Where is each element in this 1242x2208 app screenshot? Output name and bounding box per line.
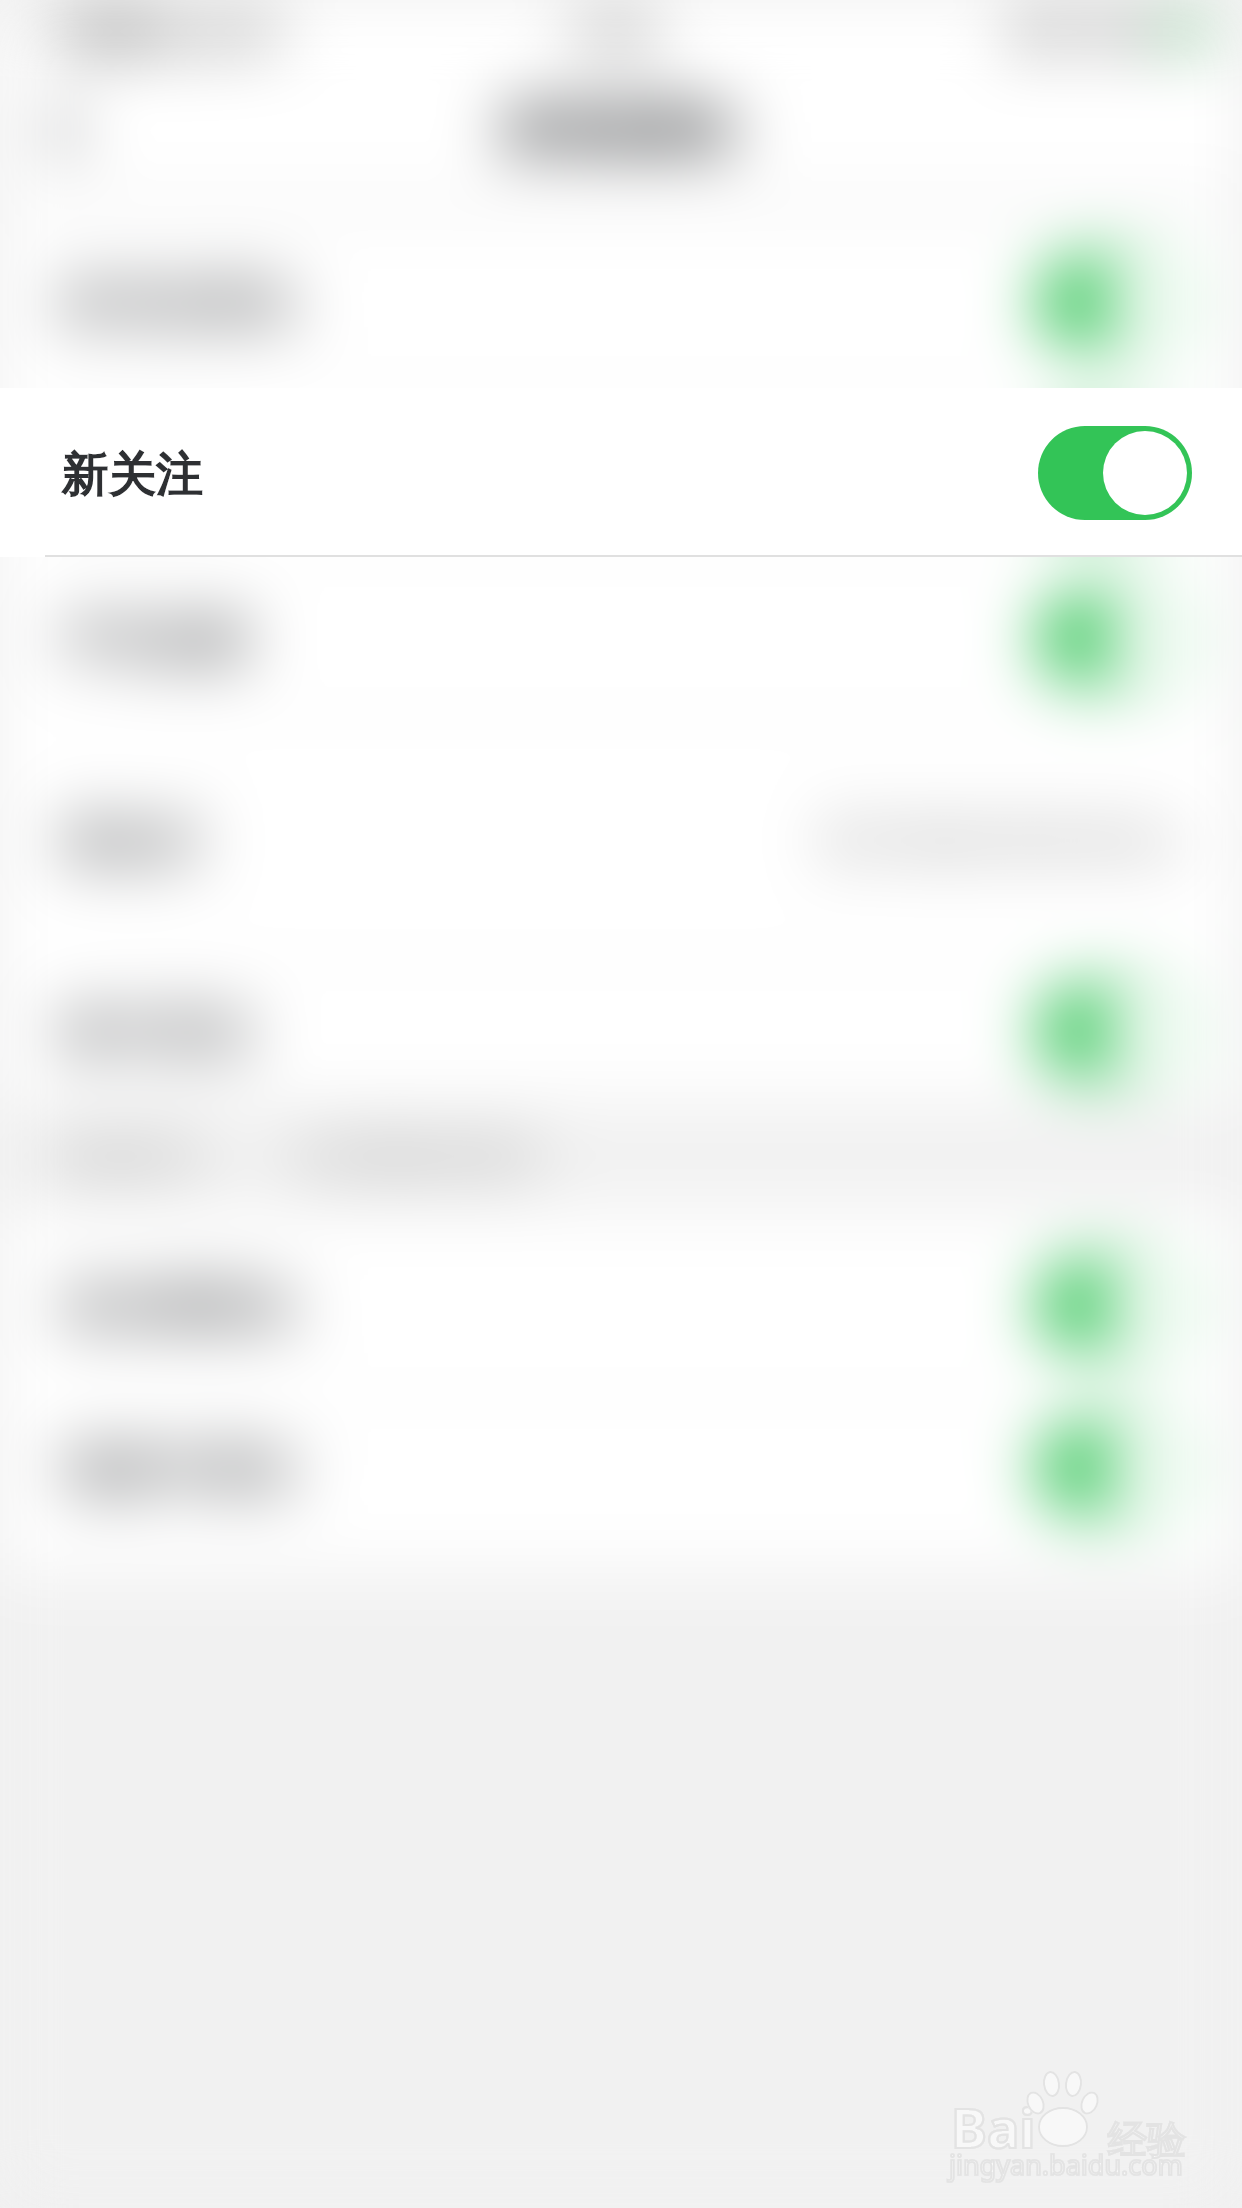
staticText: 4G xyxy=(238,10,280,54)
staticText: 85% xyxy=(1088,10,1152,54)
staticText: 通知栏 xyxy=(62,813,203,872)
staticText: 聊天置顶 xyxy=(62,1004,250,1063)
staticText: 4G xyxy=(238,10,280,54)
button[interactable]: Toggle notification setting, on xyxy=(1038,255,1192,349)
staticText: 通知栏 xyxy=(62,813,203,872)
staticText: 中国移动 xyxy=(46,11,182,54)
staticText: 经验 xyxy=(1108,2115,1186,2164)
staticText: 85% xyxy=(1088,10,1152,54)
staticText: 4G xyxy=(238,10,280,54)
staticText: 视频号通知 xyxy=(62,1441,297,1500)
staticText: 新关注 xyxy=(62,445,203,504)
staticText: 视频号通知 xyxy=(62,1441,297,1500)
button[interactable]: Toggle notification setting, on xyxy=(1038,1258,1192,1352)
staticText: 视频号通知 xyxy=(62,1441,297,1500)
button[interactable]: 新消息通知 xyxy=(0,215,1242,388)
staticText: Bai xyxy=(951,2090,1036,2164)
staticText: 声音提醒 xyxy=(62,611,250,670)
staticText: 朋友圈通知 xyxy=(62,1278,297,1337)
button[interactable]: 朋友圈通知 xyxy=(0,1211,1242,1399)
staticText: 新关注 xyxy=(62,445,203,504)
staticText: 新消息通知 xyxy=(62,274,297,333)
staticText: 声音提醒 xyxy=(62,611,250,670)
button[interactable]: Toggle notification setting, on xyxy=(1038,426,1192,520)
staticText: 新消息通知 xyxy=(506,101,736,159)
staticText: 85% xyxy=(1088,10,1152,54)
staticText: jingyan.baidu.com xyxy=(949,2146,1183,2183)
staticText: 中国移动 xyxy=(46,11,182,54)
staticText: 通知栏 xyxy=(62,813,203,872)
staticText: 新消息通知 xyxy=(506,101,736,159)
staticText: 85% xyxy=(1088,10,1152,54)
staticText: 声音提醒 xyxy=(62,611,250,670)
staticText: 朋友圈通知 xyxy=(62,1278,297,1337)
button[interactable]: 新关注 xyxy=(0,388,1242,557)
button[interactable]: 声音提醒 xyxy=(0,557,1242,719)
staticText: 新消息通知 xyxy=(506,101,736,159)
staticText: 通知栏 xyxy=(62,813,203,872)
button[interactable]: 聊天置顶 xyxy=(0,961,1242,1101)
staticText: 朋友圈通知 xyxy=(62,1278,297,1337)
staticText: 视频号通知 xyxy=(62,1441,297,1500)
staticText: 聊天置顶 xyxy=(62,1004,250,1063)
staticText: 新关注 xyxy=(62,445,203,504)
staticText: 朋友圈通知 xyxy=(62,1278,297,1337)
staticText: 新消息通知 xyxy=(62,274,297,333)
staticText: 聊天置顶 xyxy=(62,1004,250,1063)
staticText: 新关注 xyxy=(62,445,203,504)
button[interactable]: Toggle notification setting, on xyxy=(1038,984,1192,1078)
button[interactable]: Toggle notification setting, on xyxy=(1038,591,1192,685)
staticText: 新消息通知 xyxy=(506,101,736,159)
button[interactable]: 视频号通知 xyxy=(0,1399,1242,1537)
staticText: 声音提醒 xyxy=(62,611,250,670)
staticText: 4G xyxy=(238,10,280,54)
button[interactable]: Toggle notification setting, on xyxy=(1038,1421,1192,1515)
staticText: 中国移动 xyxy=(46,11,182,54)
button[interactable]: 通知栏 xyxy=(0,719,1242,961)
staticText: Bai xyxy=(951,2090,1036,2164)
staticText: 经验 xyxy=(1108,2115,1186,2164)
staticText: 新消息通知 xyxy=(62,274,297,333)
staticText: jingyan.baidu.com xyxy=(949,2146,1183,2183)
staticText: 新消息通知 xyxy=(62,274,297,333)
staticText: 聊天置顶 xyxy=(62,1004,250,1063)
staticText: 中国移动 xyxy=(46,11,182,54)
